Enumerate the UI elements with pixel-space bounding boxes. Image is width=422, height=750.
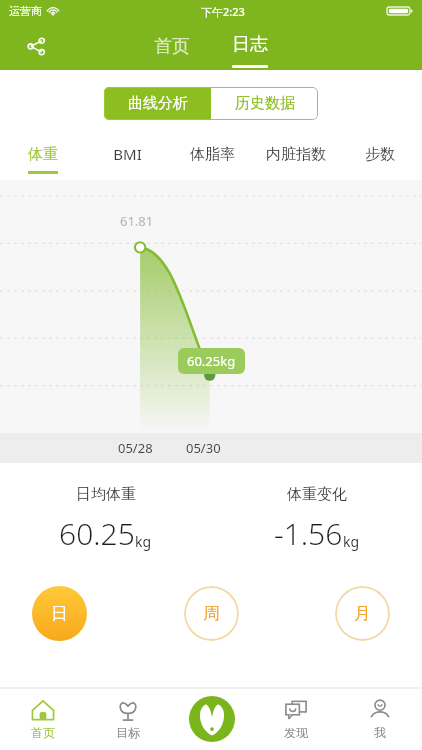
button[interactable]: Add record [170,688,254,750]
staticText: 首页 [31,725,55,740]
staticText: 历史数据 [235,94,295,113]
button[interactable]: 体重 [0,138,85,180]
button[interactable]: 发现 [254,688,338,750]
staticText: 下午2:23 [201,4,245,19]
staticText: kg [343,532,360,551]
staticText: 运营商 [9,4,42,18]
button[interactable]: 内脏指数 [254,138,338,180]
staticText: 首页 [154,35,190,58]
staticText: 体重变化 [287,485,347,504]
button[interactable]: 目标 [85,688,170,750]
button[interactable]: 首页 [0,688,85,750]
staticText: 发现 [284,725,308,740]
button[interactable]: 步数 [338,138,422,180]
button[interactable]: 历史数据 [211,87,318,120]
staticText: 体脂率 [190,145,235,164]
button[interactable]: 月 [335,586,390,641]
staticText: 月 [354,603,371,624]
staticText: 日志 [232,33,268,56]
button[interactable]: Share [16,26,56,66]
staticText: 日 [51,603,68,624]
staticText: 日均体重 [76,485,136,504]
staticText: 目标 [116,725,140,740]
staticText: BMI [113,144,142,164]
button[interactable]: 我 [338,688,422,750]
button[interactable]: 曲线分析 [104,87,211,120]
button[interactable]: BMI [85,138,170,180]
staticText: 61.81 [120,212,154,230]
staticText: 我 [374,725,386,740]
staticText: -1.56 [274,513,343,554]
button[interactable]: 体脂率 [170,138,254,180]
staticText: 60.25 [59,513,135,554]
staticText: 周 [203,603,220,624]
staticText: 内脏指数 [266,145,326,164]
staticText: 05/28 [118,439,153,457]
button[interactable]: 首页 [140,27,204,66]
staticText: 步数 [365,145,395,164]
button[interactable]: 周 [184,586,239,641]
button[interactable]: 日志 [218,25,282,68]
staticText: 曲线分析 [128,94,188,113]
button[interactable]: 日 [32,586,87,641]
staticText: 60.25kg [187,352,236,370]
staticText: 05/30 [186,439,221,457]
staticText: kg [135,532,152,551]
staticText: 体重 [28,145,58,164]
